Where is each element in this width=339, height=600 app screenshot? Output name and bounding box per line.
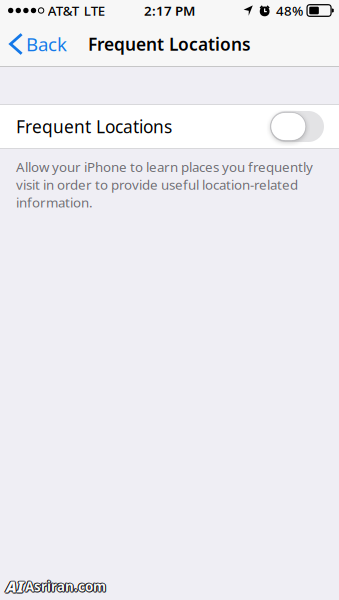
staticText: Asriran.com xyxy=(26,577,107,595)
staticText: LTE xyxy=(84,2,105,19)
staticText: 2:17 PM xyxy=(144,2,195,19)
button[interactable]: Back xyxy=(0,21,77,67)
staticText: Back xyxy=(26,32,67,56)
staticText: Asriran.com xyxy=(25,578,106,596)
staticText: Asriran.com xyxy=(24,577,105,595)
staticText: AI xyxy=(6,576,24,597)
staticText: AI xyxy=(6,577,24,598)
staticText: Frequent Locations xyxy=(88,32,251,55)
staticText: 48% xyxy=(276,2,303,19)
button[interactable]: Frequent Locations, off xyxy=(270,111,324,142)
staticText: Allow your iPhone to learn places you fr… xyxy=(16,158,313,211)
staticText: Asriran.com xyxy=(26,578,107,596)
button[interactable]: Frequent Locations xyxy=(0,104,339,149)
staticText: Frequent Locations xyxy=(16,115,172,138)
staticText: Asriran.com xyxy=(25,577,106,595)
staticText: Asriran.com xyxy=(25,577,106,594)
staticText: AI xyxy=(6,575,24,596)
staticText: Asriran.com xyxy=(24,577,105,594)
staticText: AI xyxy=(5,575,23,596)
staticText: AI xyxy=(7,576,25,597)
staticText: AI xyxy=(7,576,25,598)
staticText: AI xyxy=(5,576,23,597)
staticText: AT&T xyxy=(48,2,79,19)
